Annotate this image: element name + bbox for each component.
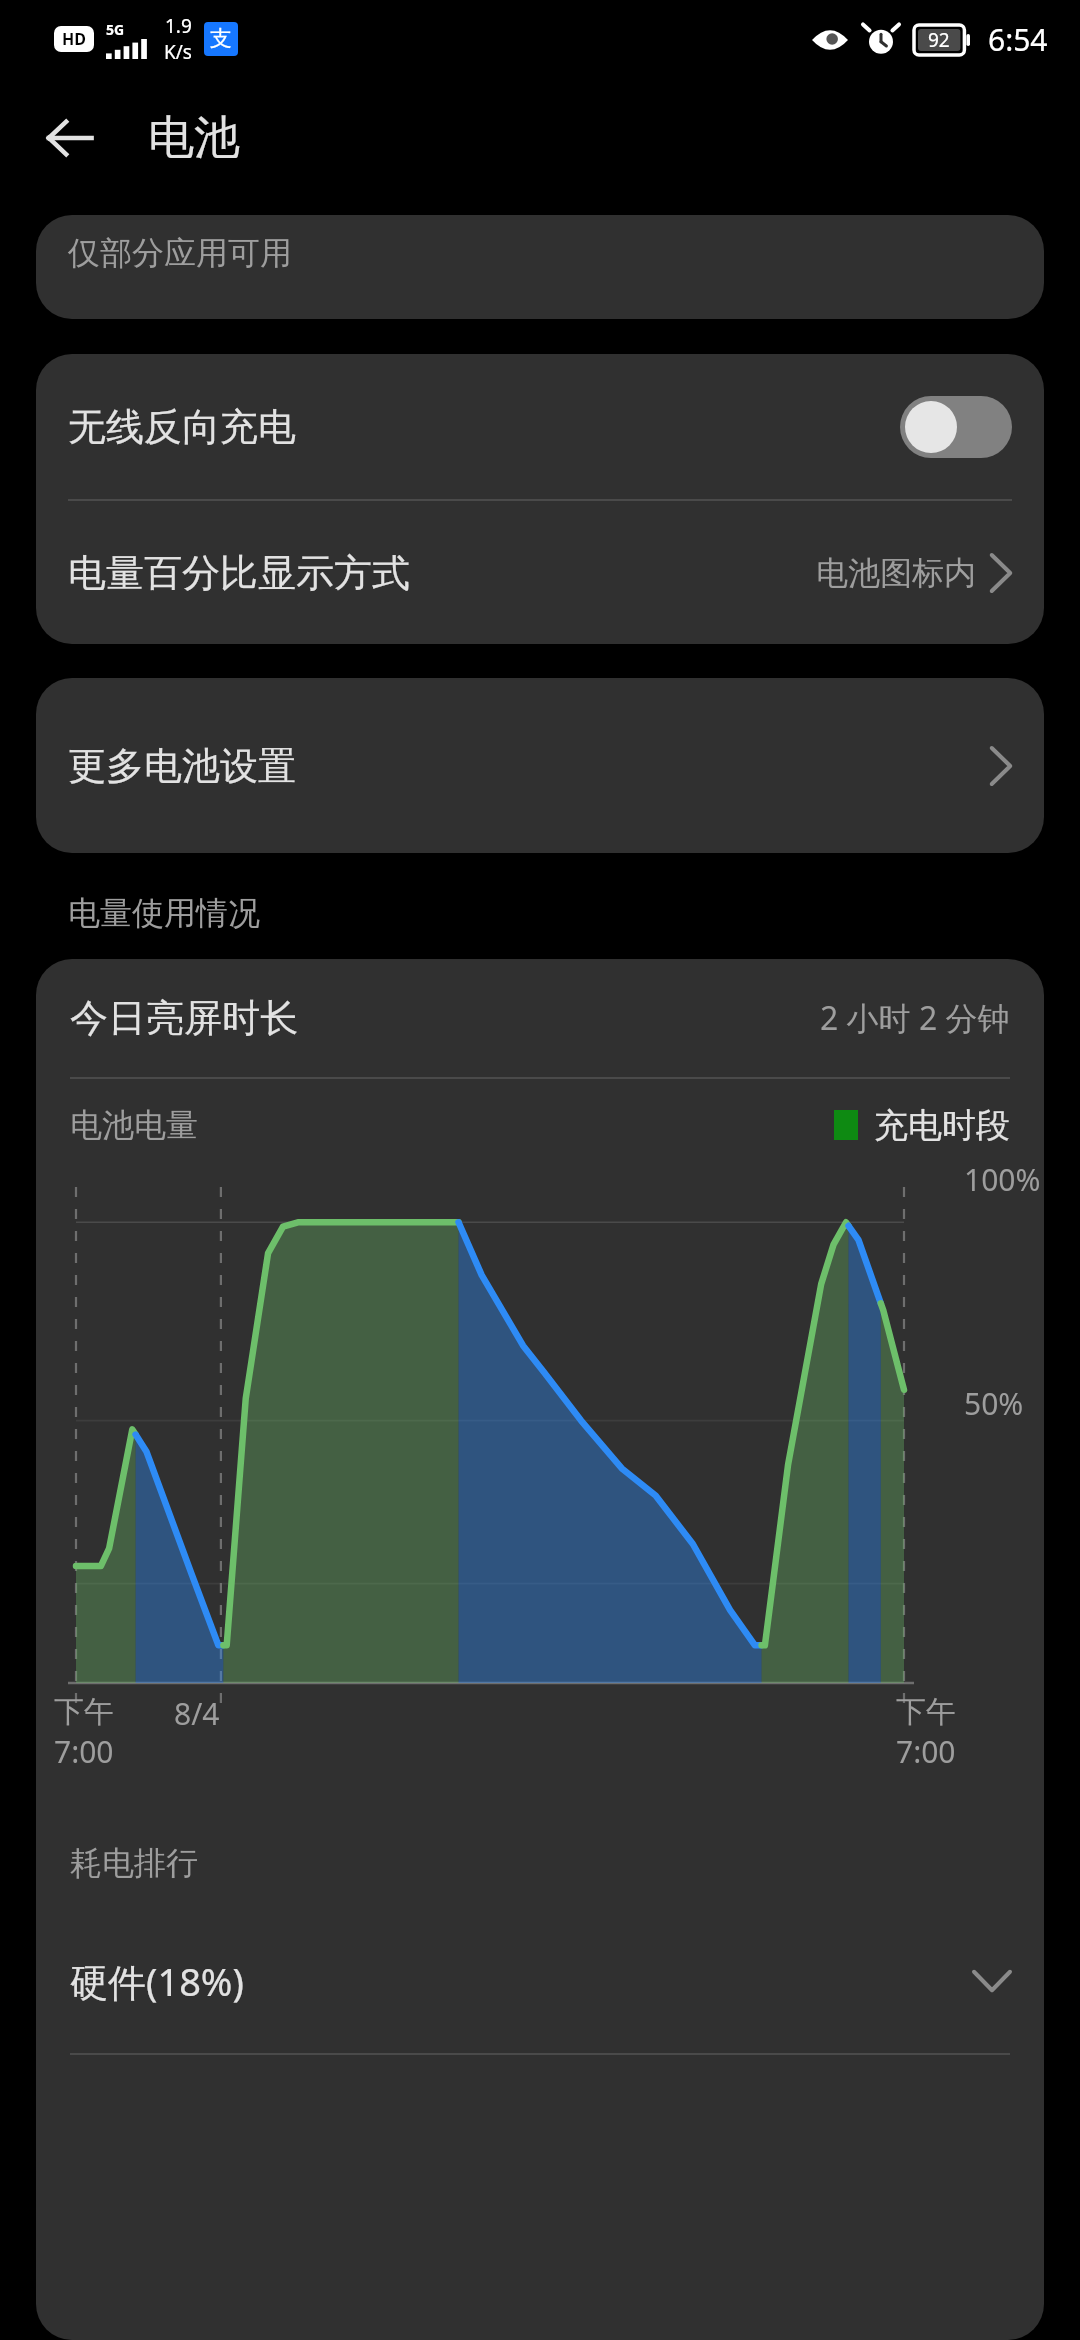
staticText: 硬件(18%) (70, 1955, 244, 2007)
staticText: 5G (106, 20, 125, 39)
staticText: 今日亮屏时长 (70, 994, 298, 1042)
staticText: 50% (964, 1383, 1024, 1424)
staticText: K/s (164, 39, 192, 65)
button[interactable]: 硬件(18%) (36, 1931, 1044, 2031)
button[interactable]: Back (34, 102, 106, 174)
staticText: 7:00 (896, 1731, 956, 1772)
staticText: 下午 (896, 1693, 956, 1731)
staticText: HD (62, 28, 86, 50)
staticText: 92 (928, 27, 950, 53)
button[interactable]: 今日亮屏时长 (36, 959, 1044, 1077)
staticText: 充电时段 (874, 1104, 1010, 1147)
other: 展开 (974, 1970, 1010, 1992)
staticText: 1.9 (165, 13, 192, 39)
staticText: 电池图标内 (816, 553, 976, 593)
staticText: 更多电池设置 (68, 742, 296, 790)
staticText: 8/4 (174, 1693, 220, 1734)
staticText: 无线反向充电 (68, 403, 296, 451)
staticText: 7:00 (54, 1731, 114, 1772)
button[interactable]: 无线反向充电 (900, 396, 1012, 458)
staticText: 仅部分应用可用 (68, 233, 292, 273)
staticText: 100% (964, 1159, 1041, 1200)
staticText: 电量百分比显示方式 (68, 549, 410, 597)
staticText: 电量使用情况 (68, 893, 260, 933)
staticText: 电池电量 (70, 1105, 198, 1145)
staticText: 6:54 (988, 19, 1048, 60)
staticText: 耗电排行 (70, 1843, 198, 1883)
staticText: 下午 (54, 1693, 114, 1731)
staticText: 2 小时 2 分钟 (820, 996, 1010, 1040)
button[interactable]: 电量百分比显示方式 (36, 501, 1044, 644)
button[interactable]: 无线反向充电 (36, 354, 1044, 499)
staticText: 电池 (148, 109, 240, 167)
button[interactable]: 更多电池设置 (36, 678, 1044, 853)
staticText: 支 (210, 25, 232, 53)
